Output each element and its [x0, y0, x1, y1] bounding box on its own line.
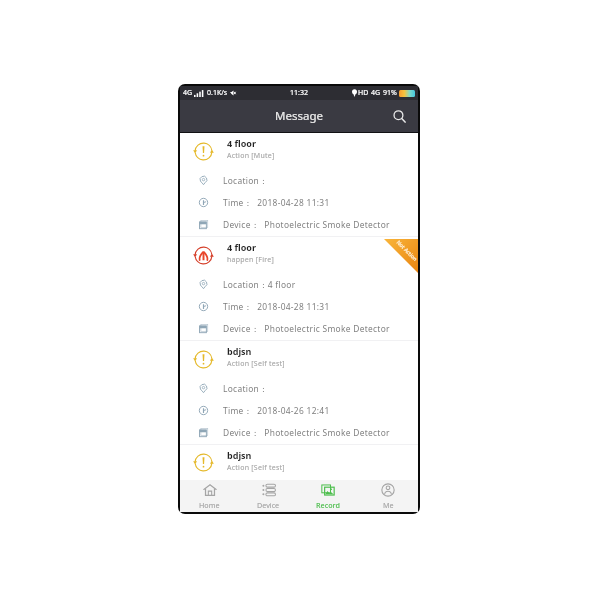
- button[interactable]: 4 floor: [180, 133, 418, 236]
- staticText: Time： 2018-04-28 11:31: [223, 197, 330, 208]
- staticText: Location：: [223, 383, 268, 394]
- staticText: Time： 2018-04-26 12:41: [223, 405, 330, 416]
- staticText: 0.1K/s: [207, 88, 228, 98]
- staticText: Location：: [223, 175, 268, 186]
- staticText: Device： Photoelectric Smoke Detector: [223, 219, 390, 230]
- button[interactable]: Device: [239, 480, 298, 512]
- button[interactable]: Search: [389, 106, 409, 126]
- staticText: 4 floor: [227, 241, 256, 253]
- staticText: Time： 2018-04-28 11:31: [223, 301, 330, 312]
- staticText: Message: [275, 108, 323, 124]
- staticText: 4G: [183, 88, 193, 98]
- staticText: bdjsn: [227, 345, 252, 357]
- staticText: Action [Self test]: [227, 463, 285, 473]
- button[interactable]: Me: [358, 480, 418, 512]
- staticText: Location：4 floor: [223, 279, 296, 290]
- staticText: 91%: [383, 88, 397, 98]
- staticText: Device： Photoelectric Smoke Detector: [223, 323, 390, 334]
- staticText: 11:32: [290, 88, 308, 98]
- staticText: Action [Mute]: [227, 151, 275, 161]
- staticText: 4 floor: [227, 137, 256, 149]
- staticText: Device: [257, 500, 280, 510]
- staticText: Me: [383, 500, 394, 510]
- staticText: 4G: [371, 88, 381, 98]
- button[interactable]: bdjsn: [180, 445, 418, 480]
- button[interactable]: 4 floor: [180, 237, 418, 340]
- button[interactable]: bdjsn: [180, 341, 418, 444]
- button[interactable]: Record: [298, 480, 358, 512]
- staticText: Record: [316, 500, 340, 510]
- staticText: bdjsn: [227, 449, 252, 461]
- staticText: Home: [199, 500, 220, 510]
- staticText: Device： Photoelectric Smoke Detector: [223, 427, 390, 438]
- staticText: HD: [358, 88, 369, 98]
- staticText: Not Action: [395, 238, 419, 262]
- staticText: happen [Fire]: [227, 255, 274, 265]
- button[interactable]: Home: [180, 480, 239, 512]
- staticText: Action [Self test]: [227, 359, 285, 369]
